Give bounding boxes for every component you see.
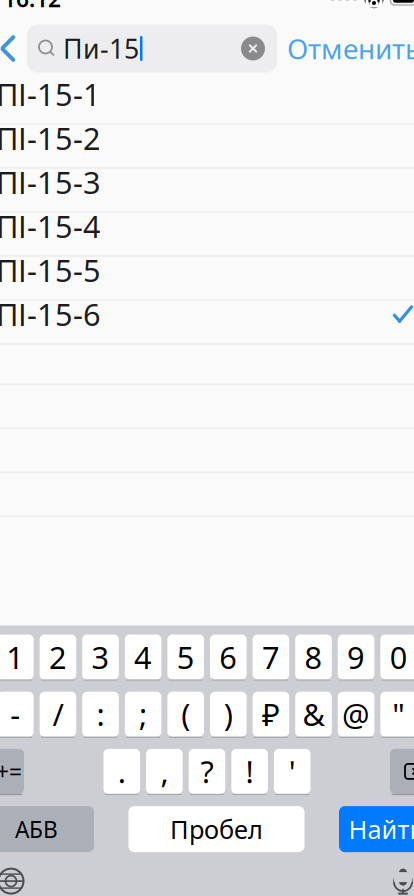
staticText: &	[302, 694, 324, 734]
staticText: ПІ-15-3	[0, 162, 101, 202]
staticText: @	[342, 694, 370, 734]
staticText: 0	[390, 637, 408, 677]
button[interactable]: 0	[380, 634, 414, 681]
button[interactable]: -	[0, 692, 34, 738]
staticText: 8	[304, 637, 322, 677]
button[interactable]: ПІ-15-6	[0, 296, 414, 340]
button[interactable]: Delete	[390, 749, 414, 795]
button[interactable]: Найти	[339, 806, 414, 852]
staticText: #+=	[0, 756, 22, 786]
button[interactable]: '	[274, 749, 310, 795]
button[interactable]: АБВ	[0, 806, 94, 852]
button[interactable]: Пробел	[128, 806, 304, 852]
button[interactable]: 8	[295, 634, 332, 681]
staticText: 9	[347, 637, 365, 677]
staticText: ПІ-15-1	[0, 74, 101, 114]
staticText: Найти	[348, 812, 414, 846]
button[interactable]: 1	[0, 634, 34, 681]
button[interactable]: ПІ-15-3	[0, 164, 414, 208]
staticText: 7	[262, 637, 280, 677]
button[interactable]: Next keyboard	[0, 860, 37, 896]
button[interactable]: 6	[210, 634, 247, 681]
staticText: 2	[49, 637, 67, 677]
button[interactable]: 4	[125, 634, 161, 681]
button[interactable]: 2	[40, 634, 76, 681]
staticText: 6	[219, 637, 237, 677]
button[interactable]: 3	[82, 634, 119, 681]
staticText: )	[224, 694, 233, 734]
staticText: ₽	[262, 694, 280, 734]
staticText: ,	[160, 751, 168, 792]
button[interactable]: ПІ-15-2	[0, 120, 414, 164]
staticText: '	[289, 751, 296, 792]
staticText: ПІ-15-5	[0, 250, 101, 290]
button[interactable]: !	[231, 749, 268, 795]
button[interactable]: .	[103, 749, 140, 795]
button[interactable]: :	[82, 692, 119, 738]
button[interactable]: 7	[253, 634, 289, 681]
staticText: Отменить	[287, 30, 414, 67]
staticText: ?	[200, 751, 213, 792]
staticText: 3	[91, 637, 109, 677]
button[interactable]: Clear text	[241, 36, 277, 60]
staticText: ПІ-15-6	[0, 294, 101, 334]
button[interactable]: ПІ-15-4	[0, 208, 414, 252]
button[interactable]: )	[210, 692, 247, 738]
button[interactable]: ?	[189, 749, 225, 795]
button[interactable]: Back	[0, 26, 27, 70]
staticText: Пробел	[170, 812, 263, 846]
button[interactable]: "	[380, 692, 414, 738]
staticText: ПІ-15-4	[0, 206, 101, 246]
staticText: :	[96, 694, 104, 734]
staticText: Пи-15	[63, 31, 139, 66]
button[interactable]: @	[338, 692, 374, 738]
button[interactable]: Dictation	[377, 860, 414, 896]
staticText: ;	[139, 694, 147, 734]
button[interactable]: ,	[146, 749, 183, 795]
button[interactable]: (	[167, 692, 204, 738]
button[interactable]: ;	[125, 692, 161, 738]
button[interactable]: ₽	[253, 692, 289, 738]
button[interactable]: /	[40, 692, 76, 738]
staticText: !	[246, 751, 254, 792]
staticText: 16:12	[3, 0, 61, 13]
button[interactable]: 9	[338, 634, 374, 681]
button[interactable]: Отменить	[277, 26, 414, 70]
button[interactable]: &	[295, 692, 332, 738]
button[interactable]: 5	[167, 634, 204, 681]
staticText: .	[118, 751, 126, 792]
staticText: АБВ	[15, 814, 58, 844]
button[interactable]: ПІ-15-1	[0, 76, 414, 120]
staticText: 5	[177, 637, 195, 677]
staticText: (	[181, 694, 190, 734]
button[interactable]: #+=	[0, 749, 24, 795]
staticText: 1	[6, 637, 24, 677]
staticText: 4	[134, 637, 152, 677]
staticText: /	[52, 694, 63, 734]
staticText: -	[10, 694, 20, 734]
staticText: "	[392, 694, 405, 734]
staticText: ПІ-15-2	[0, 118, 101, 158]
button[interactable]: ПІ-15-5	[0, 252, 414, 296]
